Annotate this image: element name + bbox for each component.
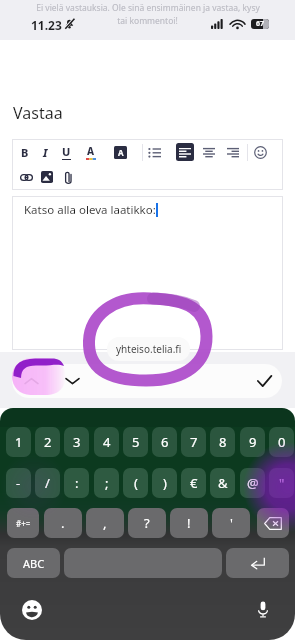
staticText: 11.23 — [31, 17, 62, 33]
button[interactable]: ! — [170, 508, 208, 538]
button[interactable]: 9 — [240, 427, 265, 457]
button[interactable] — [226, 548, 289, 578]
staticText: 3 — [73, 433, 81, 451]
button[interactable]: : — [64, 468, 89, 498]
button[interactable]: ? — [128, 508, 166, 538]
staticText: Katso alla oleva laatikko: — [24, 202, 156, 218]
button[interactable] — [174, 141, 196, 163]
staticText: Vastaa — [13, 102, 63, 124]
button[interactable] — [257, 508, 289, 538]
staticText: ; — [105, 474, 109, 492]
button[interactable]: B — [14, 141, 36, 163]
button[interactable] — [57, 166, 79, 188]
staticText: 4 — [103, 433, 111, 451]
button[interactable]: U — [55, 141, 77, 163]
button[interactable]: Emoji — [20, 598, 44, 622]
staticText: , — [103, 514, 107, 532]
staticText: 67 — [256, 19, 265, 29]
button[interactable] — [249, 141, 271, 163]
button[interactable]: " — [269, 468, 294, 498]
staticText: 1 — [15, 433, 23, 451]
staticText: 8 — [219, 433, 227, 451]
staticText: & — [218, 474, 228, 492]
staticText: " — [279, 474, 285, 492]
staticText: A — [87, 144, 95, 158]
staticText: Ei vielä vastauksia. Ole sinä ensimmäine… — [36, 2, 260, 14]
button[interactable]: 0 — [269, 427, 294, 457]
staticText: U — [62, 144, 71, 159]
staticText: yhteiso.telia.fi — [116, 342, 182, 356]
staticText: 9 — [249, 433, 257, 451]
button[interactable]: A — [80, 141, 102, 163]
button[interactable]: Voice input — [251, 596, 275, 622]
staticText: ! — [187, 514, 191, 532]
button[interactable]: . — [44, 508, 82, 538]
button[interactable]: ( — [123, 468, 148, 498]
button[interactable] — [64, 548, 222, 578]
button[interactable]: @ — [240, 468, 265, 498]
button[interactable]: 5 — [123, 427, 148, 457]
staticText: ' — [230, 514, 233, 532]
button[interactable]: Done — [249, 364, 279, 398]
button[interactable]: 2 — [35, 427, 60, 457]
button[interactable]: / — [35, 468, 60, 498]
staticText: A — [118, 147, 124, 158]
button[interactable]: 7 — [181, 427, 206, 457]
button[interactable] — [15, 166, 37, 188]
staticText: #+= — [16, 518, 31, 529]
button[interactable]: 3 — [64, 427, 89, 457]
button[interactable]: 1 — [6, 427, 31, 457]
staticText: 5 — [132, 433, 140, 451]
button[interactable]: A — [109, 141, 131, 163]
staticText: 6 — [161, 433, 169, 451]
staticText: - — [16, 474, 21, 492]
staticText: ( — [134, 474, 138, 492]
button[interactable]: 8 — [210, 427, 235, 457]
button[interactable]: ) — [152, 468, 177, 498]
staticText: : — [75, 474, 79, 492]
button[interactable] — [36, 166, 58, 188]
button[interactable]: 6 — [152, 427, 177, 457]
staticText: . — [61, 514, 65, 532]
button[interactable]: Previous — [16, 364, 46, 398]
staticText: tai kommentoi! — [117, 15, 178, 27]
button[interactable]: - — [6, 468, 31, 498]
button[interactable]: ' — [212, 508, 250, 538]
staticText: 0 — [278, 433, 286, 451]
button[interactable] — [143, 141, 165, 163]
button[interactable]: Next — [57, 364, 87, 398]
button[interactable]: ABC — [7, 548, 60, 578]
staticText: B — [21, 145, 29, 160]
staticText: ) — [163, 474, 167, 492]
button[interactable]: ; — [94, 468, 119, 498]
staticText: 7 — [190, 433, 198, 451]
button[interactable]: #+= — [7, 508, 39, 538]
staticText: / — [45, 474, 50, 492]
button[interactable]: I — [34, 141, 56, 163]
staticText: € — [190, 474, 198, 492]
button[interactable] — [222, 141, 244, 163]
button[interactable]: , — [86, 508, 124, 538]
staticText: I — [43, 145, 48, 160]
staticText: ? — [144, 514, 150, 532]
button[interactable]: 4 — [94, 427, 119, 457]
button[interactable]: yhteiso.telia.fi — [107, 337, 190, 361]
button[interactable] — [198, 141, 220, 163]
button[interactable]: € — [181, 468, 206, 498]
staticText: 2 — [44, 433, 52, 451]
staticText: @ — [247, 474, 259, 492]
staticText: ABC — [23, 556, 45, 571]
button[interactable]: & — [210, 468, 235, 498]
